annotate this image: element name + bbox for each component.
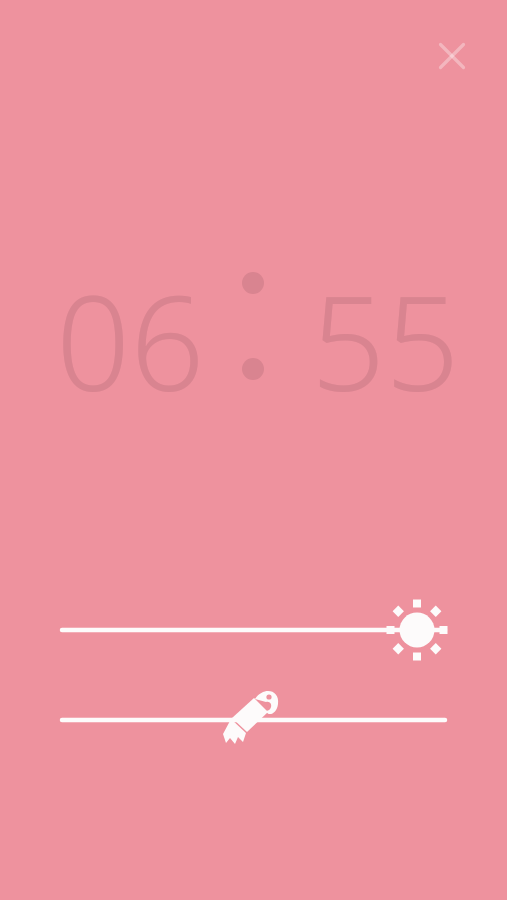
button[interactable]: Brightness [50,590,470,670]
button[interactable]: Close [428,32,476,80]
staticText: 06 [56,252,205,429]
staticText: 55 [311,252,460,429]
button[interactable]: Brush size [50,682,470,758]
